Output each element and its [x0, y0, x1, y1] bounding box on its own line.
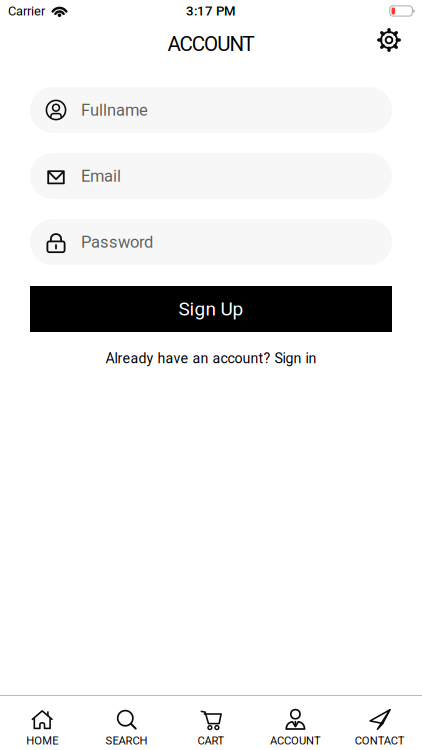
staticText: CONTACT [355, 734, 405, 747]
button[interactable]: SEARCH [84, 696, 169, 747]
staticText: SEARCH [106, 734, 148, 747]
staticText: CART [197, 734, 224, 747]
button[interactable]: CART [169, 696, 253, 747]
button[interactable]: ACCOUNT [253, 696, 338, 747]
staticText: Sign Up [178, 298, 243, 320]
staticText: Fullname [81, 100, 148, 120]
staticText: Already have an account? Sign in [105, 350, 316, 367]
button[interactable]: Fullname [30, 87, 392, 133]
button[interactable]: Already have an account? Sign in [105, 350, 316, 367]
staticText: ACCOUNT [167, 32, 255, 56]
staticText: Carrier [8, 3, 45, 18]
staticText: ACCOUNT [270, 734, 321, 747]
button[interactable] [376, 27, 402, 53]
staticText: HOME [26, 734, 58, 747]
button[interactable]: Sign Up [30, 286, 392, 332]
button[interactable]: Email [30, 153, 392, 199]
staticText: Email [81, 166, 121, 186]
button[interactable]: CONTACT [338, 696, 422, 747]
button[interactable]: HOME [0, 696, 84, 747]
staticText: 3:17 PM [186, 3, 236, 19]
button[interactable]: Password [30, 219, 392, 265]
staticText: Password [81, 232, 153, 252]
